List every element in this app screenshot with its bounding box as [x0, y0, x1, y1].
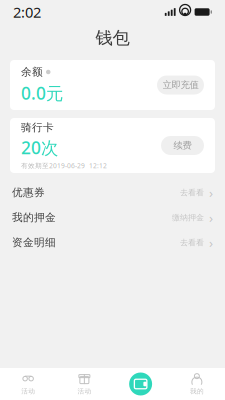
staticText: 我的 — [190, 387, 204, 395]
button[interactable]: 我的押金 — [0, 205, 225, 230]
staticText: 钱包 — [95, 27, 129, 49]
staticText: 资金明细 — [12, 236, 56, 249]
staticText: › — [209, 209, 213, 226]
staticText: 去看看 — [180, 238, 204, 247]
button[interactable]: 我的 — [169, 368, 225, 400]
button[interactable]: 资金明细 — [0, 230, 225, 255]
staticText: 20次 — [21, 136, 58, 159]
staticText: 立即充值 — [162, 79, 198, 91]
staticText: 0.0元 — [21, 81, 63, 104]
staticText: › — [209, 184, 213, 201]
staticText: 2:02 — [13, 2, 41, 22]
staticText: 活动 — [21, 387, 35, 395]
staticText: 续费 — [173, 140, 191, 151]
staticText: 活动 — [77, 387, 91, 395]
button[interactable]: 立即充值 — [157, 75, 204, 94]
button[interactable]: 活动 — [56, 368, 112, 400]
staticText: 优惠券 — [12, 186, 45, 199]
staticText: 余额 — [21, 65, 43, 78]
button[interactable]: 活动 — [0, 368, 56, 400]
staticText: 缴纳押金 — [172, 213, 204, 222]
button[interactable]: 优惠券 — [0, 180, 225, 205]
staticText: 我的押金 — [12, 211, 56, 224]
button[interactable]: 钱包 — [112, 368, 169, 400]
button[interactable]: 续费 — [161, 136, 204, 155]
staticText: 骑行卡 — [21, 121, 54, 134]
staticText: 去看看 — [180, 188, 204, 197]
staticText: 有效期至2019-06-29 12:12 — [21, 161, 107, 170]
staticText: › — [209, 234, 213, 251]
